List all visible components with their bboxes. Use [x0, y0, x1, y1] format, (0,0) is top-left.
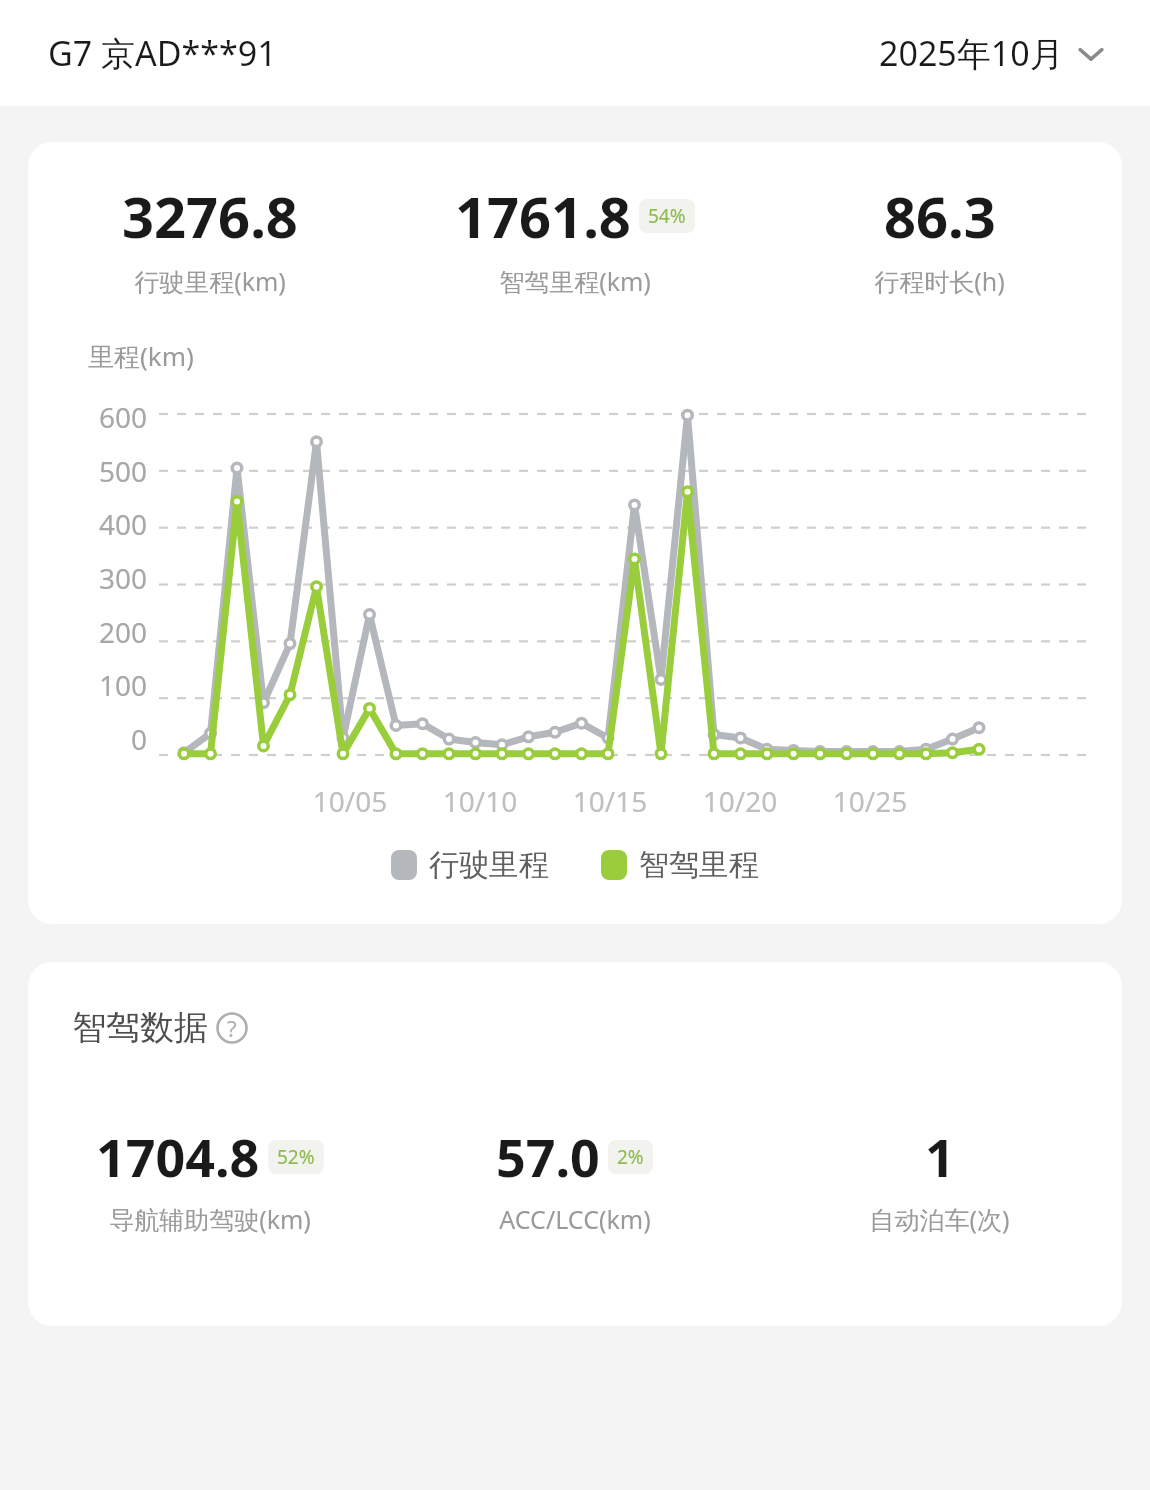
staticText: 57.0 [496, 1121, 600, 1192]
staticText: 2025年10月 [879, 30, 1064, 76]
staticText: 10/20 [685, 782, 795, 820]
staticText: 1761.8 [455, 178, 631, 254]
staticText: 52% [277, 1144, 315, 1170]
other: Help [216, 1012, 248, 1044]
staticText: 600 [99, 398, 148, 436]
staticText: 自动泊车(次) [869, 1202, 1010, 1236]
staticText: 1704.8 [96, 1121, 260, 1192]
staticText: 54% [648, 203, 686, 229]
staticText: 行驶里程 [429, 846, 549, 884]
staticText: 2% [617, 1144, 644, 1170]
staticText: 200 [99, 613, 148, 651]
button[interactable]: 行驶里程 [391, 846, 549, 884]
staticText: 智驾数据 [72, 1006, 208, 1049]
button[interactable]: 智驾里程 [601, 846, 759, 884]
staticText: 0 [131, 720, 148, 758]
button[interactable]: G7 京AD***91 [48, 30, 277, 76]
staticText: 3276.8 [122, 178, 298, 254]
staticText: 里程(km) [88, 338, 194, 374]
staticText: 500 [99, 452, 148, 490]
staticText: 10/15 [555, 782, 665, 820]
staticText: 10/05 [295, 782, 405, 820]
staticText: 行驶里程(km) [134, 264, 286, 298]
staticText: 智驾里程 [639, 846, 759, 884]
staticText: 智驾里程(km) [499, 264, 651, 298]
other: Select month [1074, 36, 1108, 70]
staticText: 导航辅助驾驶(km) [109, 1202, 311, 1236]
staticText: 行程时长(h) [874, 264, 1005, 298]
staticText: 10/10 [425, 782, 535, 820]
staticText: 300 [99, 559, 148, 597]
staticText: 1 [925, 1121, 955, 1192]
button[interactable]: 2025年10月 [879, 30, 1108, 76]
staticText: 400 [99, 505, 148, 543]
staticText: ? [227, 1013, 237, 1043]
staticText: 100 [99, 666, 148, 704]
button[interactable]: 智驾数据 [72, 1006, 280, 1049]
staticText: 10/25 [815, 782, 925, 820]
staticText: ACC/LCC(km) [499, 1202, 651, 1236]
staticText: 86.3 [884, 178, 996, 254]
